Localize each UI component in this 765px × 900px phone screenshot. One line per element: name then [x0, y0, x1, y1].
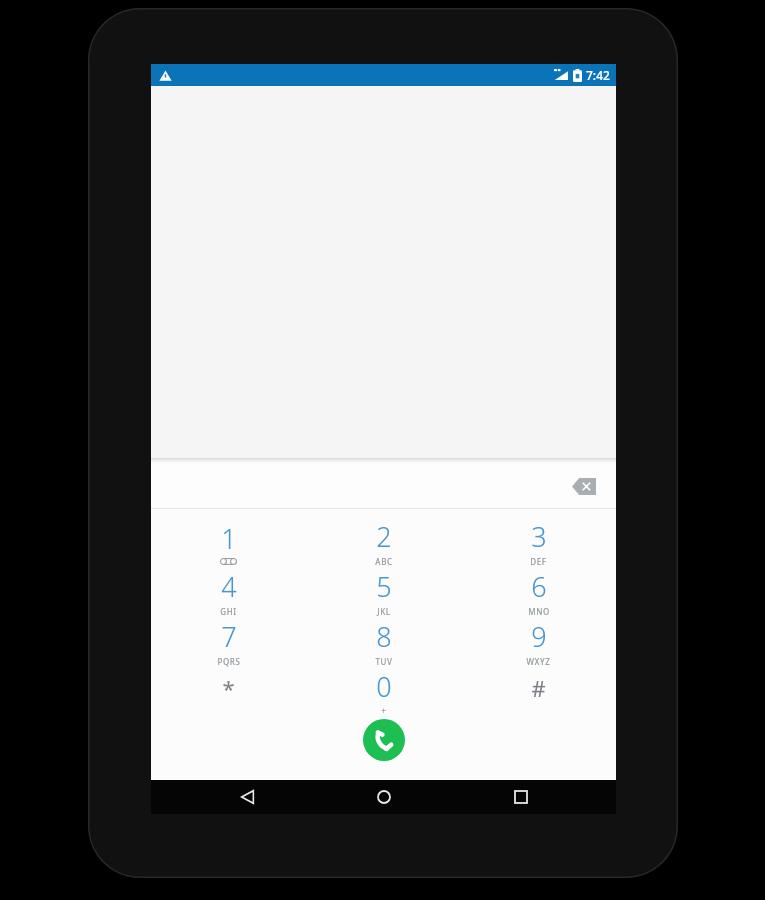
- button[interactable]: 4: [151, 567, 306, 617]
- staticText: 0: [376, 668, 392, 705]
- button[interactable]: 1: [151, 517, 306, 567]
- staticText: 4: [221, 568, 237, 605]
- staticText: TUV: [375, 656, 393, 667]
- button[interactable]: *: [151, 667, 306, 717]
- button[interactable]: 7: [151, 617, 306, 667]
- staticText: #: [531, 673, 546, 703]
- staticText: PQRS: [217, 656, 241, 667]
- staticText: +: [381, 705, 386, 716]
- staticText: 6: [531, 568, 547, 605]
- staticText: 8: [376, 618, 392, 655]
- staticText: GHI: [220, 606, 237, 617]
- button[interactable]: 6: [461, 567, 616, 617]
- staticText: JKL: [377, 606, 391, 617]
- button[interactable]: #: [461, 667, 616, 717]
- button[interactable]: Back: [232, 782, 262, 812]
- staticText: ABC: [375, 556, 393, 567]
- button[interactable]: Home: [369, 782, 399, 812]
- staticText: 5: [376, 568, 392, 605]
- staticText: *: [222, 673, 235, 703]
- staticText: DEF: [530, 556, 547, 567]
- button[interactable]: 5: [306, 567, 461, 617]
- staticText: 9: [531, 618, 547, 655]
- staticText: 2: [376, 518, 392, 555]
- staticText: 3: [531, 518, 547, 555]
- button[interactable]: 0: [306, 667, 461, 717]
- button[interactable]: 9: [461, 617, 616, 667]
- button[interactable]: 2: [306, 517, 461, 567]
- staticText: 7: [221, 618, 237, 655]
- staticText: MNO: [528, 606, 550, 617]
- button[interactable]: Backspace: [564, 468, 604, 504]
- staticText: 1: [221, 520, 237, 557]
- button[interactable]: 3: [461, 517, 616, 567]
- staticText: WXYZ: [526, 656, 551, 667]
- button[interactable]: 8: [306, 617, 461, 667]
- staticText: 7:42: [586, 67, 610, 83]
- button[interactable]: Recent apps: [506, 782, 536, 812]
- button[interactable]: Call: [363, 719, 405, 761]
